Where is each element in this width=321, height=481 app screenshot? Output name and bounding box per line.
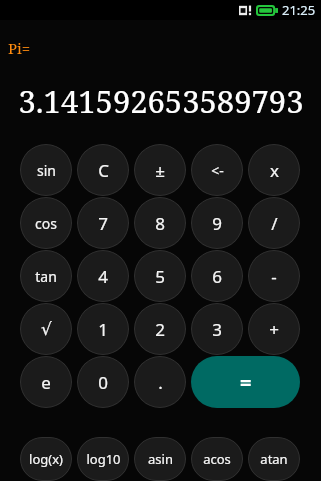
staticText: sin: [37, 161, 56, 180]
button[interactable]: 1: [77, 303, 129, 355]
staticText: x: [270, 159, 279, 182]
button[interactable]: +: [248, 303, 300, 355]
staticText: 7: [98, 212, 108, 235]
button[interactable]: C: [77, 144, 129, 196]
button[interactable]: 0: [77, 356, 129, 408]
button[interactable]: √: [20, 303, 72, 355]
staticText: 0: [98, 371, 108, 394]
staticText: /: [271, 212, 278, 235]
staticText: atan: [260, 450, 288, 468]
staticText: acos: [203, 450, 231, 468]
button[interactable]: atan: [248, 437, 300, 481]
button[interactable]: sin: [20, 144, 72, 196]
button[interactable]: 6: [191, 250, 243, 302]
button[interactable]: log(x): [20, 437, 72, 481]
other: SIM card alert: [239, 4, 252, 17]
button[interactable]: 5: [134, 250, 186, 302]
staticText: cos: [35, 214, 57, 233]
button[interactable]: .: [134, 356, 186, 408]
staticText: 4: [98, 265, 108, 288]
button[interactable]: =: [191, 356, 300, 408]
staticText: 8: [155, 212, 165, 235]
staticText: tan: [35, 267, 57, 286]
button[interactable]: 9: [191, 197, 243, 249]
staticText: e: [41, 371, 51, 394]
other: Battery full: [256, 5, 278, 16]
button[interactable]: tan: [20, 250, 72, 302]
staticText: -: [271, 265, 277, 288]
staticText: =: [240, 369, 252, 396]
button[interactable]: acos: [191, 437, 243, 481]
button[interactable]: 7: [77, 197, 129, 249]
button[interactable]: 3: [191, 303, 243, 355]
button[interactable]: <-: [191, 144, 243, 196]
staticText: 21:25: [282, 1, 316, 19]
staticText: 9: [212, 212, 222, 235]
staticText: +: [269, 318, 279, 341]
button[interactable]: ±: [134, 144, 186, 196]
staticText: .: [158, 371, 163, 394]
staticText: 6: [212, 265, 222, 288]
staticText: 3.141592653589793: [18, 80, 304, 122]
staticText: 3: [212, 318, 222, 341]
button[interactable]: x: [248, 144, 300, 196]
staticText: asin: [148, 450, 173, 468]
button[interactable]: asin: [134, 437, 186, 481]
staticText: log(x): [29, 450, 63, 468]
staticText: C: [98, 159, 109, 182]
staticText: ±: [155, 159, 165, 182]
button[interactable]: 4: [77, 250, 129, 302]
staticText: 5: [155, 265, 165, 288]
staticText: 2: [155, 318, 165, 341]
button[interactable]: e: [20, 356, 72, 408]
staticText: √: [41, 319, 52, 339]
staticText: Pi=: [8, 38, 31, 58]
staticText: log10: [86, 450, 121, 468]
button[interactable]: 2: [134, 303, 186, 355]
staticText: <-: [211, 161, 224, 180]
button[interactable]: cos: [20, 197, 72, 249]
button[interactable]: /: [248, 197, 300, 249]
button[interactable]: log10: [77, 437, 129, 481]
button[interactable]: 8: [134, 197, 186, 249]
button[interactable]: -: [248, 250, 300, 302]
staticText: 1: [98, 318, 108, 341]
